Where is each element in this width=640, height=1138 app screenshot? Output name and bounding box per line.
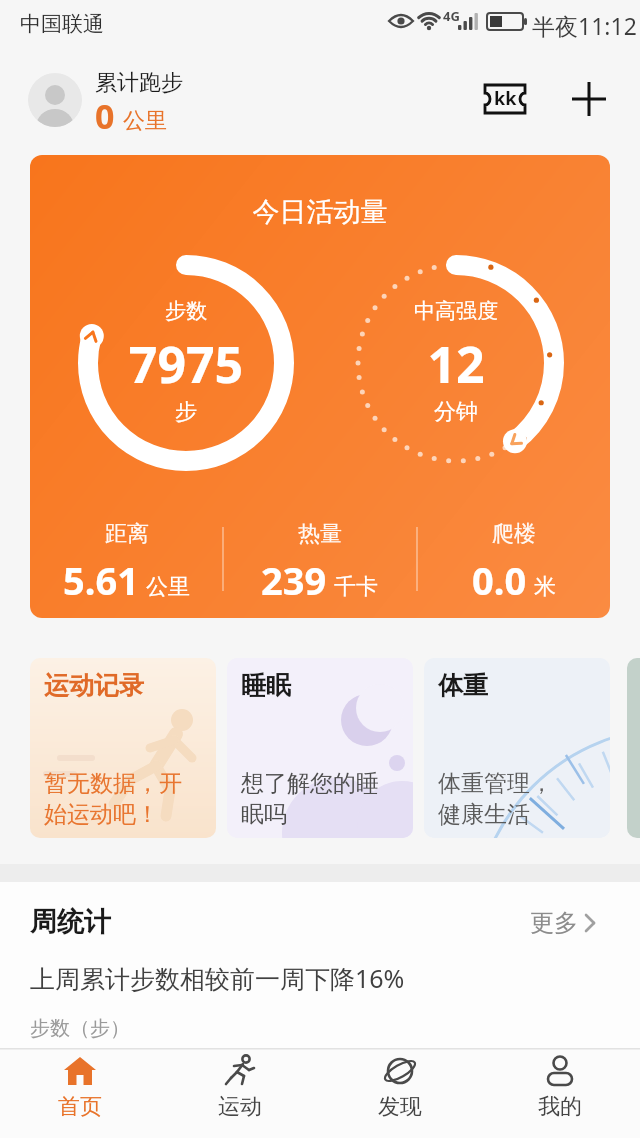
staticText: 步数 (78, 298, 294, 324)
staticText: 体重管理， 健康生活 (438, 769, 553, 829)
button[interactable]: 今日活动量 (30, 155, 610, 618)
staticText: 周统计 (30, 905, 111, 939)
staticText: 公里 (123, 107, 167, 135)
button[interactable]: 发现 (320, 1048, 480, 1138)
staticText: 分钟 (348, 398, 564, 426)
staticText: 公里 (146, 573, 190, 601)
staticText: 更多 (530, 908, 578, 938)
staticText: 5.61 (63, 554, 139, 606)
staticText: 7975 (78, 330, 294, 398)
staticText: 累计跑步 (95, 69, 183, 97)
button[interactable]: 我的 (480, 1048, 640, 1138)
staticText: 热量 (298, 520, 342, 548)
staticText: 千卡 (334, 573, 378, 601)
button[interactable]: 首页 (0, 1048, 160, 1138)
button[interactable] (566, 76, 612, 122)
staticText: 米 (534, 573, 556, 601)
staticText: 半夜11:12 (532, 10, 637, 41)
staticText: 发现 (378, 1093, 422, 1121)
button[interactable]: 更多 (530, 905, 610, 941)
staticText: 239 (261, 554, 327, 606)
staticText: 0.0 (472, 554, 527, 606)
staticText: 步 (78, 398, 294, 426)
staticText: 上周累计步数相较前一周下降16% (30, 961, 405, 995)
staticText: 首页 (58, 1093, 102, 1121)
staticText: 睡眠 (241, 670, 291, 701)
staticText: 中国联通 (20, 11, 104, 37)
staticText: 今日活动量 (30, 195, 610, 229)
staticText: 爬楼 (492, 520, 536, 548)
button[interactable]: 运动记录 (30, 658, 216, 838)
staticText: 4G (443, 7, 460, 25)
button[interactable]: 体重 (424, 658, 610, 838)
staticText: 体重 (438, 670, 488, 701)
staticText: kk (494, 86, 517, 111)
staticText: 步数（步） (30, 1016, 130, 1041)
staticText: 中高强度 (348, 298, 564, 324)
button[interactable]: 运动 (160, 1048, 320, 1138)
staticText: 暂无数据，开 始运动吧！ (44, 769, 182, 829)
staticText: 想了解您的睡 眠吗 (241, 769, 379, 829)
button[interactable]: 睡眠 (227, 658, 413, 838)
staticText: 12 (348, 330, 564, 398)
staticText: 0 (95, 93, 115, 139)
staticText: 运动 (218, 1093, 262, 1121)
staticText: 我的 (538, 1093, 582, 1121)
button[interactable]: kk (480, 78, 530, 120)
button[interactable] (28, 73, 82, 127)
staticText: 运动记录 (44, 670, 144, 701)
staticText: 距离 (105, 520, 149, 548)
